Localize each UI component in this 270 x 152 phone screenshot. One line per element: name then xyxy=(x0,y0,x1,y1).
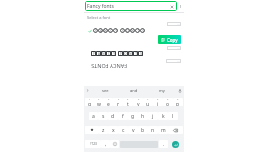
staticText: my xyxy=(159,88,165,93)
staticText: 5 xyxy=(127,98,129,101)
button[interactable]: 9 xyxy=(163,98,173,106)
button[interactable]: Copy xyxy=(158,35,181,44)
staticText: 1 xyxy=(89,98,91,101)
button[interactable]: n xyxy=(148,126,158,134)
button[interactable]: z xyxy=(99,126,108,134)
staticText: S xyxy=(142,29,144,33)
staticText: O xyxy=(124,52,127,56)
staticText: e xyxy=(107,101,110,106)
staticText: C xyxy=(108,52,110,56)
staticText: g xyxy=(131,113,135,120)
staticText: u xyxy=(146,101,150,106)
staticText: i xyxy=(157,101,159,106)
staticText: n xyxy=(151,127,155,134)
button[interactable]: j xyxy=(148,112,158,120)
staticText: x xyxy=(112,127,115,134)
button[interactable]: More options xyxy=(177,0,183,12)
button[interactable]: g xyxy=(128,112,138,120)
button[interactable]: 1 xyxy=(85,98,94,106)
button[interactable]: b xyxy=(138,126,148,134)
staticText: 2 xyxy=(98,98,100,101)
staticText: m xyxy=(161,127,166,134)
button[interactable]: 3 xyxy=(103,98,113,106)
staticText: 4 xyxy=(118,98,120,101)
button[interactable]: F xyxy=(87,26,181,34)
staticText: FANCY FONTS xyxy=(91,63,127,70)
button[interactable]: Flipped xyxy=(166,59,181,63)
button[interactable]: v xyxy=(128,126,138,134)
button[interactable]: 7 xyxy=(143,98,153,106)
staticText: y xyxy=(137,101,140,106)
button[interactable]: Boxed xyxy=(167,46,181,50)
button[interactable]: 4 xyxy=(113,98,123,106)
button[interactable]: F xyxy=(87,50,181,57)
button[interactable]: 8 xyxy=(153,98,163,106)
staticText: Shape xyxy=(168,23,176,26)
staticText: o xyxy=(166,101,170,106)
button[interactable]: , xyxy=(101,140,110,148)
button[interactable]: Enter xyxy=(172,141,179,148)
staticText: a xyxy=(92,113,95,120)
staticText: l xyxy=(172,113,174,120)
staticText: v xyxy=(132,127,135,134)
staticText: . xyxy=(163,141,165,148)
button[interactable]: a xyxy=(89,112,98,120)
staticText: w xyxy=(97,101,101,106)
staticText: O xyxy=(126,29,129,33)
button[interactable]: my xyxy=(148,86,176,95)
button[interactable]: c xyxy=(118,126,128,134)
staticText: Fancy fonts xyxy=(87,3,114,10)
button[interactable]: Voice input xyxy=(176,86,184,95)
staticText: t xyxy=(127,101,129,106)
staticText: 9 xyxy=(167,98,169,101)
staticText: j xyxy=(152,113,154,120)
button[interactable]: Shift xyxy=(85,126,99,134)
staticText: N xyxy=(131,29,134,33)
button[interactable]: 5 xyxy=(123,98,133,106)
button[interactable]: . xyxy=(159,140,168,148)
button[interactable]: s xyxy=(98,112,108,120)
button[interactable]: Emoji xyxy=(110,140,119,148)
button[interactable]: m xyxy=(158,126,168,134)
staticText: f xyxy=(122,113,124,120)
button[interactable]: h xyxy=(138,112,148,120)
staticText: Y xyxy=(113,52,115,56)
button[interactable]: ?123 xyxy=(85,140,101,148)
button[interactable]: f xyxy=(118,112,128,120)
staticText: 8 xyxy=(157,98,159,101)
button[interactable]: Clear search xyxy=(168,3,175,10)
staticText: A xyxy=(100,29,102,33)
staticText: ?123 xyxy=(90,142,97,146)
button[interactable]: and xyxy=(120,86,148,95)
button[interactable]: x xyxy=(108,126,118,134)
staticText: c xyxy=(122,127,125,134)
staticText: q xyxy=(88,101,92,106)
staticText: F xyxy=(122,29,124,33)
button[interactable]: Shape xyxy=(167,22,181,26)
staticText: h xyxy=(141,113,145,120)
staticText: 0 xyxy=(177,98,179,101)
button[interactable]: 0 xyxy=(173,98,183,106)
staticText: Flipped xyxy=(167,60,176,63)
staticText: k xyxy=(162,113,165,120)
staticText: r xyxy=(117,101,120,106)
button[interactable]: Expand toolbar xyxy=(84,86,91,95)
button[interactable]: FANCY FONTS xyxy=(87,63,181,70)
button[interactable]: see xyxy=(91,86,120,95)
button[interactable]: Fancy fonts xyxy=(85,1,177,11)
staticText: d xyxy=(111,113,115,120)
staticText: F xyxy=(93,52,95,56)
button[interactable]: d xyxy=(108,112,118,120)
staticText: 7 xyxy=(147,98,149,101)
staticText: Copy xyxy=(167,37,178,43)
button[interactable]: k xyxy=(158,112,168,120)
staticText: Y xyxy=(115,29,117,33)
staticText: T xyxy=(137,29,139,33)
button[interactable]: Backspace xyxy=(168,126,183,134)
staticText: N xyxy=(102,52,105,56)
button[interactable]: 6 xyxy=(133,98,143,106)
button[interactable]: l xyxy=(168,112,178,120)
button[interactable]: 2 xyxy=(94,98,103,106)
staticText: 3 xyxy=(108,98,110,101)
